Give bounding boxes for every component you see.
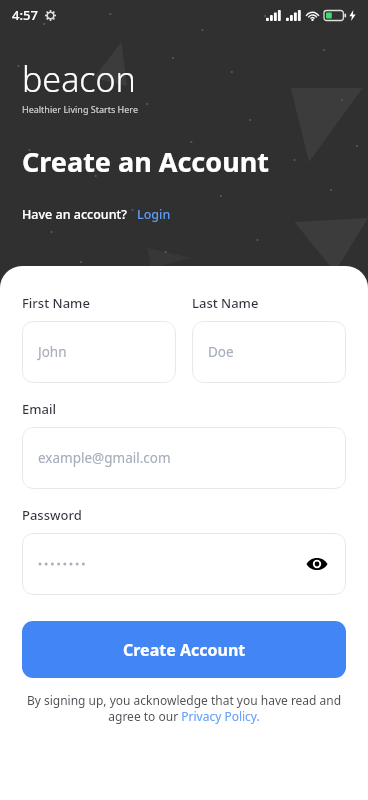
staticText: By signing up, you acknowledge that you … xyxy=(22,692,346,725)
staticText: Create Account xyxy=(123,639,246,661)
button[interactable]: Create Account xyxy=(22,621,346,678)
button[interactable]: Login xyxy=(137,206,171,223)
button[interactable]: Show password xyxy=(302,549,332,579)
staticText: beacon xyxy=(22,56,136,102)
staticText: 4:57 xyxy=(12,6,38,24)
staticText: Last Name xyxy=(192,294,259,312)
staticText: Have an account? xyxy=(22,206,127,223)
button[interactable]: example@gmail.com xyxy=(22,427,346,489)
staticText: John xyxy=(38,343,67,361)
staticText: Email xyxy=(22,400,57,418)
button[interactable]: Show password xyxy=(22,533,346,595)
staticText: Create an Account xyxy=(22,143,269,180)
staticText: First Name xyxy=(22,294,90,312)
staticText: Healthier Living Starts Here xyxy=(22,103,138,115)
staticText: Login xyxy=(137,206,171,223)
button[interactable]: John xyxy=(22,321,176,383)
staticText: Password xyxy=(22,506,82,524)
button[interactable]: Doe xyxy=(192,321,346,383)
staticText: example@gmail.com xyxy=(38,449,171,467)
staticText: Doe xyxy=(208,343,234,361)
